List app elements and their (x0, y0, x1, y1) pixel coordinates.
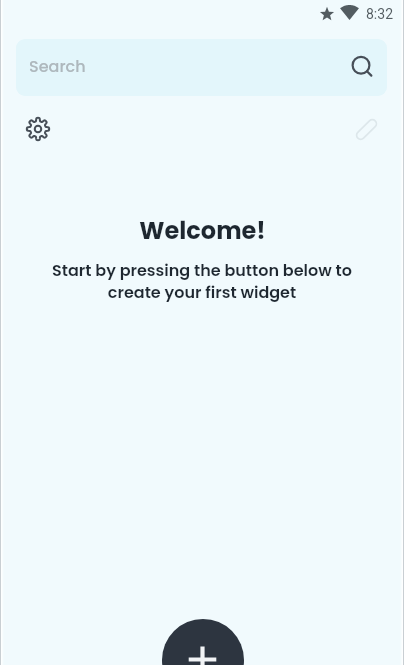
staticText: Start by pressing the button below to cr… (49, 259, 355, 304)
button[interactable]: Edit (348, 111, 384, 147)
button[interactable]: Search (16, 39, 387, 96)
staticText: Welcome! (139, 214, 266, 248)
button[interactable]: Search (347, 51, 381, 85)
staticText: Search (29, 55, 86, 77)
button[interactable]: Settings (20, 111, 56, 147)
staticText: 8:32 (366, 6, 393, 22)
button[interactable]: Add widget (162, 619, 244, 665)
